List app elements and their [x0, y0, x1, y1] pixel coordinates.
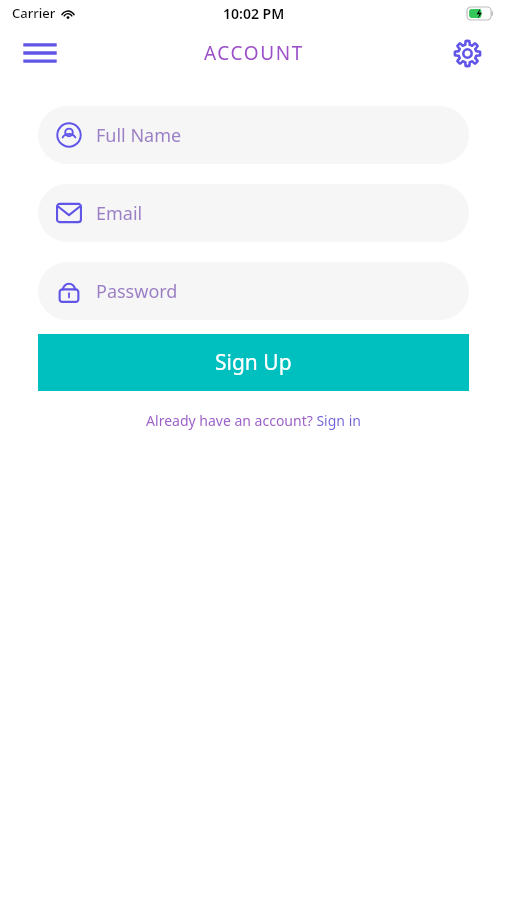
button[interactable]: Password — [38, 262, 469, 320]
button[interactable]: Sign Up — [38, 334, 469, 391]
button[interactable]: Email — [38, 184, 469, 242]
staticText: Email — [96, 201, 143, 226]
staticText: Carrier — [12, 4, 56, 22]
button[interactable]: Menu — [18, 31, 62, 75]
button[interactable]: Already have an account? Sign in — [134, 407, 373, 434]
staticText: 10:02 PM — [223, 4, 285, 23]
staticText: Sign Up — [215, 348, 292, 377]
staticText: ACCOUNT — [204, 40, 304, 66]
button[interactable]: Settings — [445, 31, 489, 75]
staticText: Password — [96, 279, 178, 304]
staticText: Already have an account? Sign in — [146, 411, 361, 430]
staticText: Full Name — [96, 123, 182, 148]
button[interactable]: Full Name — [38, 106, 469, 164]
